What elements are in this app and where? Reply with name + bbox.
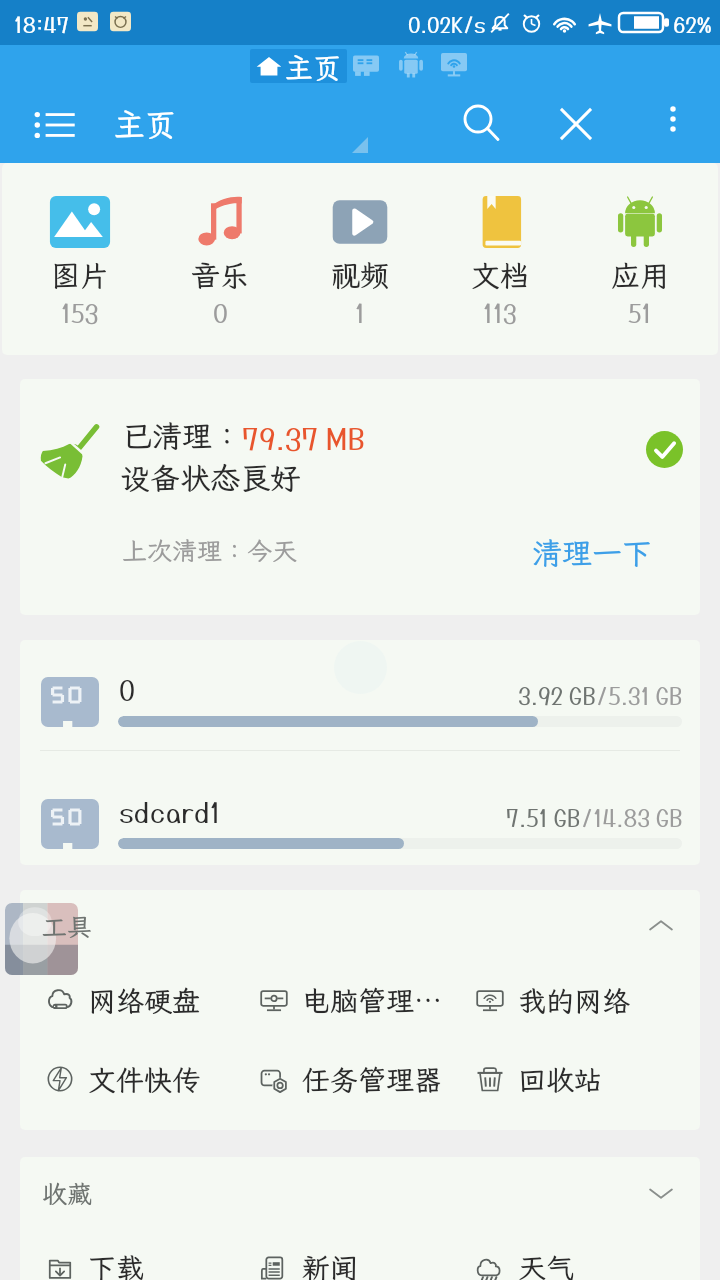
button[interactable]: 收藏 bbox=[20, 1157, 700, 1229]
button[interactable]: 0 bbox=[20, 640, 700, 750]
staticText: 工具 bbox=[42, 910, 93, 943]
button[interactable]: SD card bbox=[353, 53, 379, 79]
button[interactable]: 新闻 bbox=[250, 1239, 367, 1280]
button[interactable]: 文件快传 bbox=[36, 1051, 209, 1107]
staticText: 设备状态良好 bbox=[120, 458, 300, 498]
button[interactable]: 天气 bbox=[466, 1239, 583, 1280]
staticText: 79.37 MB bbox=[242, 421, 366, 456]
button[interactable]: 音乐 bbox=[150, 163, 290, 355]
button[interactable]: Network bbox=[441, 52, 467, 78]
staticText: 回收站 bbox=[518, 1061, 603, 1098]
button[interactable]: 清理一下 bbox=[518, 523, 666, 583]
staticText: 18:47 bbox=[14, 11, 70, 37]
staticText: 113 bbox=[483, 298, 517, 327]
staticText: 主页 bbox=[285, 49, 342, 83]
staticText: 153 bbox=[61, 298, 99, 327]
staticText: 清理一下 bbox=[532, 533, 652, 573]
staticText: 应用 bbox=[611, 256, 670, 294]
staticText: 已清理： bbox=[122, 416, 242, 456]
staticText: 视频 bbox=[331, 256, 390, 294]
staticText: 7.51 GB bbox=[506, 804, 581, 831]
staticText: 新闻 bbox=[302, 1249, 359, 1280]
button[interactable]: Menu bbox=[30, 99, 82, 151]
staticText: sdcard1 bbox=[119, 796, 221, 828]
staticText: 电脑管理… bbox=[302, 982, 443, 1019]
button[interactable]: More options bbox=[652, 98, 694, 140]
button[interactable]: 任务管理器 bbox=[250, 1051, 451, 1107]
button[interactable]: sdcard1 bbox=[20, 762, 700, 865]
staticText: 音乐 bbox=[191, 256, 250, 294]
button[interactable]: 已清理： bbox=[20, 379, 700, 615]
staticText: 上次清理：今天 bbox=[122, 534, 298, 567]
staticText: 文档 bbox=[471, 256, 530, 294]
staticText: /14.83 GB bbox=[581, 804, 683, 831]
staticText: 收藏 bbox=[42, 1177, 93, 1210]
button[interactable]: 图片 bbox=[10, 163, 150, 355]
staticText: 51 bbox=[628, 298, 652, 327]
button[interactable]: Device storage bbox=[398, 52, 424, 78]
staticText: 3.92 GB bbox=[518, 682, 596, 709]
staticText: 任务管理器 bbox=[302, 1061, 443, 1098]
button[interactable]: 回收站 bbox=[466, 1051, 611, 1107]
button[interactable]: 文档 bbox=[430, 163, 570, 355]
staticText: /5.31 GB bbox=[596, 682, 683, 709]
button[interactable]: 下载 bbox=[36, 1239, 153, 1280]
button[interactable]: 网络硬盘 bbox=[36, 972, 209, 1028]
button[interactable]: Close bbox=[550, 98, 602, 150]
button[interactable]: 电脑管理… bbox=[250, 972, 451, 1028]
staticText: 1 bbox=[355, 298, 365, 327]
button[interactable]: 主页 bbox=[250, 49, 347, 83]
staticText: 0 bbox=[119, 674, 136, 706]
staticText: 62% bbox=[673, 12, 712, 37]
button[interactable]: 我的网络 bbox=[466, 972, 639, 1028]
staticText: 图片 bbox=[51, 256, 110, 294]
staticText: 我的网络 bbox=[518, 982, 631, 1019]
button[interactable]: Search bbox=[456, 98, 506, 148]
staticText: 主页 bbox=[114, 104, 176, 145]
staticText: 0.02K/s bbox=[408, 12, 486, 37]
staticText: 网络硬盘 bbox=[88, 982, 201, 1019]
staticText: 天气 bbox=[518, 1249, 575, 1280]
staticText: 文件快传 bbox=[88, 1061, 201, 1098]
button[interactable]: 视频 bbox=[290, 163, 430, 355]
button[interactable]: 应用 bbox=[570, 163, 710, 355]
staticText: 0 bbox=[213, 298, 228, 327]
button[interactable]: 工具 bbox=[20, 890, 700, 962]
staticText: 下载 bbox=[88, 1249, 145, 1280]
